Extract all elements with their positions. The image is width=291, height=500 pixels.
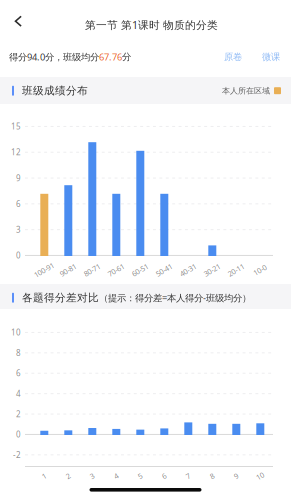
staticText: 7 <box>186 471 190 481</box>
staticText: 原卷 <box>224 51 242 63</box>
staticText: 100-91 <box>33 265 55 275</box>
staticText: 4 <box>114 471 118 481</box>
staticText: 80-71 <box>83 265 101 275</box>
staticText: （提示：得分差=本人得分-班级均分） <box>99 291 251 304</box>
staticText: 60-51 <box>131 265 149 275</box>
staticText: 5 <box>138 471 142 481</box>
staticText: 4 <box>16 388 21 399</box>
staticText: 10 <box>256 471 264 481</box>
staticText: 40-31 <box>179 265 197 275</box>
staticText: 1 <box>42 471 46 481</box>
staticText: 第一节 第1课时 物质的分类 <box>85 17 218 32</box>
staticText: 10 <box>11 327 21 338</box>
staticText: 分 <box>122 51 131 63</box>
staticText: 12 <box>11 147 21 158</box>
staticText: 各题得分差对比 <box>22 291 99 304</box>
staticText: 班级成绩分布 <box>22 84 88 97</box>
button[interactable]: Back <box>0 0 36 41</box>
staticText: 0 <box>16 250 21 261</box>
staticText: 70-61 <box>107 265 125 275</box>
staticText: 67.76 <box>99 50 122 63</box>
staticText: 6 <box>162 471 166 481</box>
staticText: 微课 <box>262 51 280 63</box>
staticText: 50-41 <box>155 265 173 275</box>
staticText: 30-21 <box>203 265 221 275</box>
staticText: 6 <box>16 368 21 379</box>
staticText: 8 <box>210 471 214 481</box>
staticText: 9 <box>234 471 238 481</box>
staticText: 10-0 <box>253 265 267 275</box>
staticText: 9 <box>16 173 21 183</box>
staticText: 3 <box>90 471 94 481</box>
staticText: 本人所在区域 <box>222 86 270 96</box>
staticText: 8 <box>16 347 21 358</box>
staticText: 0 <box>16 429 21 440</box>
button[interactable]: 微课 <box>242 51 280 63</box>
staticText: 2 <box>66 471 70 481</box>
staticText: -2 <box>13 449 21 460</box>
staticText: 15 <box>11 121 21 132</box>
button[interactable]: 原卷 <box>224 51 242 63</box>
staticText: 90-81 <box>59 265 77 275</box>
staticText: 3 <box>16 224 21 235</box>
staticText: 6 <box>16 198 21 209</box>
staticText: 得分94.0分，班级均分 <box>9 50 99 63</box>
staticText: 2 <box>16 409 21 419</box>
staticText: 20-11 <box>227 265 245 275</box>
